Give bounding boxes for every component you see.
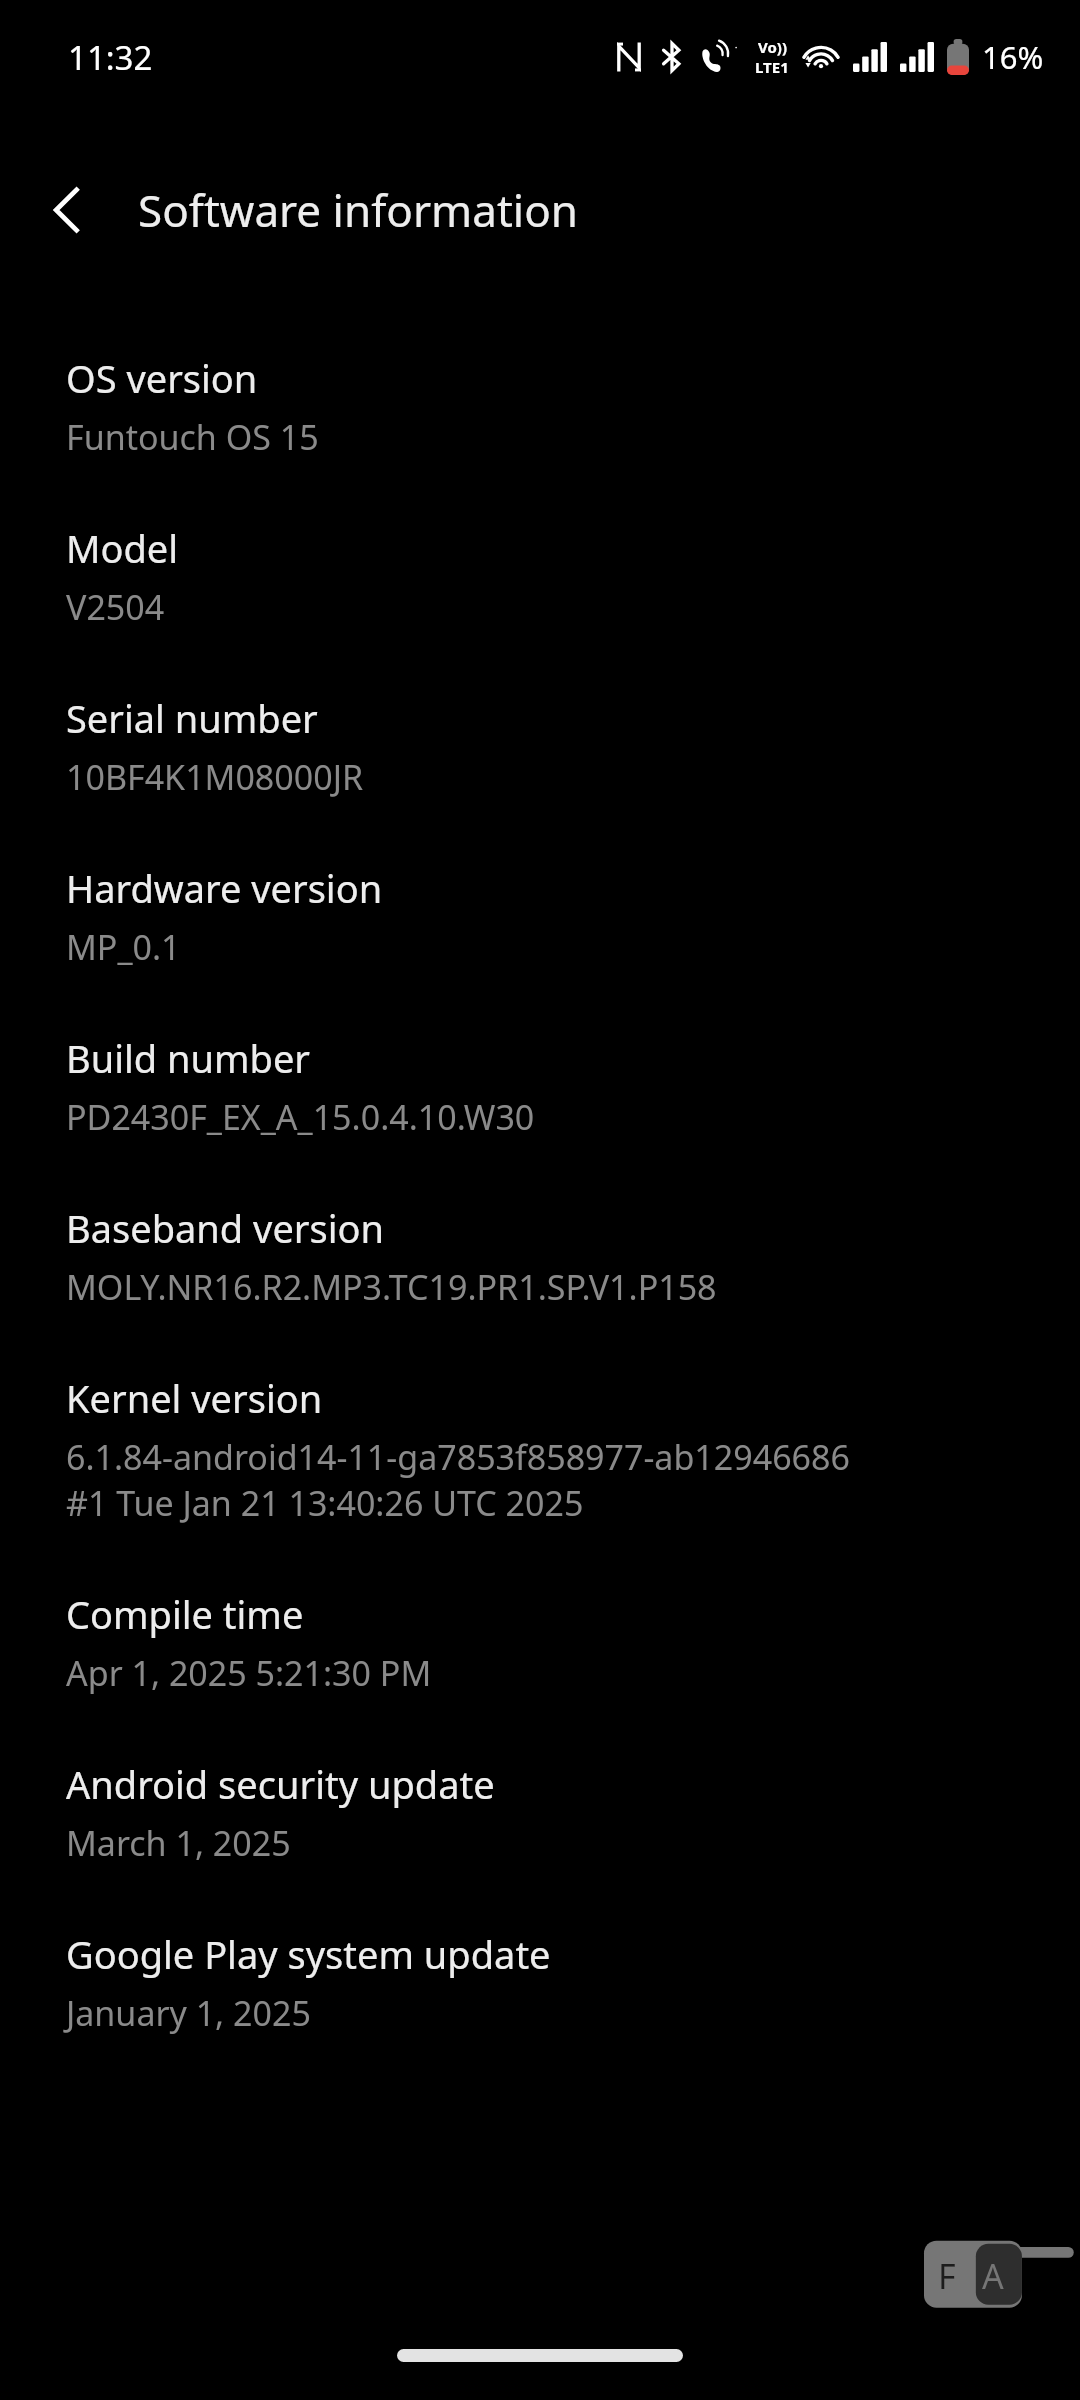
staticText: Apr 1, 2025 5:21:30 PM — [66, 1650, 432, 1696]
staticText: A — [982, 2253, 1004, 2299]
staticText: Android security update — [66, 1758, 495, 1810]
button[interactable]: Compile time — [0, 1566, 1080, 1736]
staticText: 10BF4K1M08000JR — [66, 754, 364, 800]
staticText: Build number — [66, 1032, 311, 1084]
staticText: Serial number — [66, 692, 318, 744]
button[interactable]: Android security update — [0, 1736, 1080, 1906]
button[interactable]: Google Play system update — [0, 1906, 1080, 2076]
staticText: March 1, 2025 — [66, 1820, 291, 1866]
button[interactable]: Baseband version — [0, 1180, 1080, 1350]
staticText: MOLY.NR16.R2.MP3.TC19.PR1.SP.V1.P158 — [66, 1264, 717, 1310]
staticText: V2504 — [66, 584, 165, 630]
staticText: 11:32 — [68, 35, 153, 80]
staticText: MP_0.1 — [66, 924, 181, 970]
button[interactable]: Build number — [0, 1010, 1080, 1180]
staticText: 16% — [982, 36, 1044, 78]
staticText: Vo)) — [758, 37, 787, 57]
staticText: PD2430F_EX_A_15.0.4.10.W30 — [66, 1094, 535, 1140]
staticText: Hardware version — [66, 862, 383, 914]
button[interactable]: Floating assistant — [924, 2236, 1068, 2314]
staticText: Google Play system update — [66, 1928, 551, 1980]
button[interactable]: Serial number — [0, 670, 1080, 840]
staticText: F — [938, 2253, 956, 2299]
staticText: Model — [66, 522, 179, 574]
staticText: January 1, 2025 — [66, 1990, 311, 2036]
staticText: Software information — [138, 180, 578, 240]
staticText: Baseband version — [66, 1202, 384, 1254]
staticText: Kernel version — [66, 1372, 323, 1424]
button[interactable]: Back — [34, 177, 100, 243]
staticText: LTE1 — [755, 57, 789, 77]
staticText: 6.1.84-android14-11-ga7853f858977-ab1294… — [66, 1434, 850, 1480]
staticText: Compile time — [66, 1588, 304, 1640]
button[interactable]: Kernel version — [0, 1350, 1080, 1566]
staticText: OS version — [66, 352, 258, 404]
button[interactable]: OS version — [0, 330, 1080, 500]
button[interactable]: Model — [0, 500, 1080, 670]
staticText: Funtouch OS 15 — [66, 414, 319, 460]
staticText: #1 Tue Jan 21 13:40:26 UTC 2025 — [66, 1480, 584, 1526]
button[interactable]: Hardware version — [0, 840, 1080, 1010]
